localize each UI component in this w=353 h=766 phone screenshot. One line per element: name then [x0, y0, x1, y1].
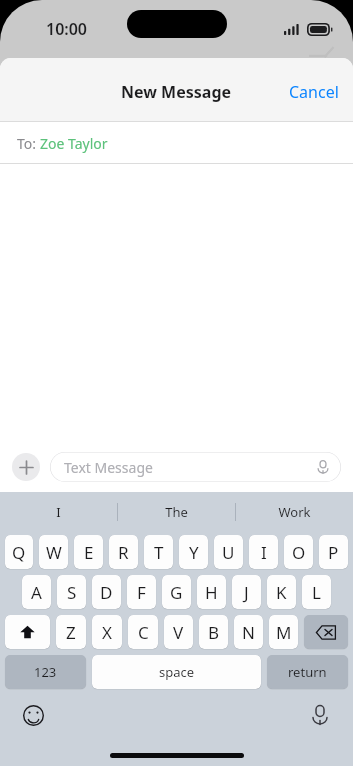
button[interactable]: Backspace	[304, 615, 348, 649]
button[interactable]: Dictation	[305, 700, 335, 730]
staticText: B	[208, 621, 220, 644]
staticText: New Message	[121, 81, 232, 103]
button[interactable]: R	[109, 535, 138, 569]
staticText: Cancel	[289, 81, 339, 103]
staticText: The	[165, 503, 188, 521]
button[interactable]: Z	[56, 615, 86, 649]
button[interactable]: D	[92, 575, 121, 609]
staticText: Q	[12, 541, 26, 564]
button[interactable]: Work	[236, 492, 353, 532]
button[interactable]: O	[284, 535, 313, 569]
button[interactable]: return	[267, 655, 348, 689]
staticText: S	[67, 581, 77, 604]
staticText: A	[31, 581, 42, 604]
button[interactable]: F	[127, 575, 156, 609]
staticText: Y	[189, 541, 199, 564]
staticText: O	[292, 541, 306, 564]
staticText: I	[56, 503, 61, 521]
staticText: Work	[278, 503, 311, 521]
staticText: V	[173, 621, 184, 644]
button[interactable]: B	[199, 615, 228, 649]
staticText: To:	[17, 134, 40, 153]
staticText: E	[84, 541, 94, 564]
button[interactable]: Q	[5, 535, 33, 569]
button[interactable]: G	[162, 575, 191, 609]
button[interactable]: I	[0, 492, 117, 532]
staticText: Zoe Taylor	[40, 134, 108, 153]
staticText: M	[276, 621, 292, 644]
other: Dictate	[314, 458, 332, 476]
button[interactable]: Add attachment	[12, 453, 40, 481]
staticText: 123	[34, 663, 57, 681]
button[interactable]: H	[197, 575, 226, 609]
staticText: Text Message	[64, 458, 153, 477]
staticText: K	[276, 581, 287, 604]
button[interactable]: T	[144, 535, 173, 569]
button[interactable]: Text Message	[50, 452, 341, 482]
button[interactable]: U	[214, 535, 243, 569]
button[interactable]: E	[74, 535, 103, 569]
button[interactable]: W	[39, 535, 68, 569]
staticText: 10:00	[46, 18, 88, 40]
staticText: space	[159, 663, 195, 681]
staticText: W	[46, 541, 62, 564]
button[interactable]: S	[57, 575, 86, 609]
button[interactable]: N	[234, 615, 263, 649]
staticText: D	[100, 581, 113, 604]
button[interactable]: L	[302, 575, 331, 609]
button[interactable]: Y	[179, 535, 208, 569]
button[interactable]: Emoji keyboard	[18, 700, 48, 730]
staticText: I	[261, 541, 267, 564]
staticText: N	[242, 621, 255, 644]
button[interactable]: 123	[5, 655, 86, 689]
staticText: F	[137, 581, 146, 604]
button[interactable]: Shift	[5, 615, 50, 649]
staticText: C	[138, 621, 149, 644]
staticText: H	[205, 581, 218, 604]
staticText: R	[118, 541, 129, 564]
staticText: U	[222, 541, 235, 564]
staticText: X	[102, 621, 112, 644]
staticText: J	[244, 581, 249, 604]
button[interactable]: C	[128, 615, 158, 649]
button[interactable]: K	[267, 575, 296, 609]
button[interactable]: To:	[0, 122, 353, 164]
button[interactable]: I	[249, 535, 278, 569]
button[interactable]: P	[319, 535, 348, 569]
staticText: P	[328, 541, 339, 564]
staticText: return	[288, 663, 327, 681]
button[interactable]: space	[92, 655, 261, 689]
button[interactable]: A	[22, 575, 51, 609]
button[interactable]: M	[269, 615, 298, 649]
staticText: L	[312, 581, 321, 604]
button[interactable]: X	[92, 615, 122, 649]
staticText: G	[170, 581, 183, 604]
button[interactable]: The	[118, 492, 235, 532]
staticText: Z	[66, 621, 76, 644]
staticText: T	[154, 541, 164, 564]
button[interactable]: J	[232, 575, 261, 609]
button[interactable]: V	[164, 615, 193, 649]
button[interactable]: Cancel	[275, 73, 353, 111]
